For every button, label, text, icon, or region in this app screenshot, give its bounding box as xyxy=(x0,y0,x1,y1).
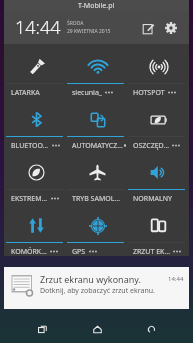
button[interactable]: Settings xyxy=(162,19,180,37)
staticText: BLUETOO… xyxy=(11,141,49,150)
staticText: GPS xyxy=(72,247,86,256)
button[interactable]: ZRZUT EK… xyxy=(128,203,189,256)
staticText: siecunia_ xyxy=(72,88,102,97)
button[interactable]: Zrzut ekranu wykonany. xyxy=(4,267,189,309)
button[interactable]: BLUETOO… xyxy=(6,97,67,150)
button[interactable]: KOMÓRK… xyxy=(6,203,67,256)
button[interactable]: OSZCZĘD… xyxy=(128,97,189,150)
button[interactable]: GPS xyxy=(67,203,128,256)
staticText: NORMALNY xyxy=(133,194,172,203)
staticText: KOMÓRK… xyxy=(11,247,47,256)
staticText: ŚRODA xyxy=(67,20,84,27)
staticText: EKSTREM… xyxy=(11,194,48,203)
staticText: 14:44 xyxy=(168,275,184,283)
staticText: 29 KWIETNIA 2015 xyxy=(67,28,111,35)
staticText: Dotknij, aby zobaczyć zrzut ekranu. xyxy=(40,286,155,296)
button[interactable]: siecunia_ xyxy=(67,44,128,97)
staticText: Zrzut ekranu wykonany. xyxy=(40,273,141,285)
button[interactable]: LATARKA xyxy=(6,44,67,97)
staticText: 14:44 xyxy=(15,15,61,40)
button[interactable]: Home xyxy=(84,316,110,342)
button[interactable]: Back xyxy=(138,316,164,342)
staticText: HOTSPOT xyxy=(133,88,165,97)
staticText: LATARKA xyxy=(11,88,40,97)
button[interactable]: AUTOMATYCZ… xyxy=(67,97,128,150)
staticText: AUTOMATYCZ… xyxy=(72,141,123,150)
staticText: ZRZUT EK… xyxy=(133,247,170,256)
button[interactable]: EKSTREM… xyxy=(6,150,67,203)
staticText: TRYB SAMOL… xyxy=(72,194,120,203)
staticText: T-Mobile.pl xyxy=(78,1,115,11)
button[interactable]: Recents xyxy=(29,316,55,342)
button[interactable]: TRYB SAMOL… xyxy=(67,150,128,203)
button[interactable]: Edit xyxy=(139,19,157,37)
button[interactable]: HOTSPOT xyxy=(128,44,189,97)
button[interactable]: NORMALNY xyxy=(128,150,189,203)
staticText: OSZCZĘD… xyxy=(133,141,169,150)
